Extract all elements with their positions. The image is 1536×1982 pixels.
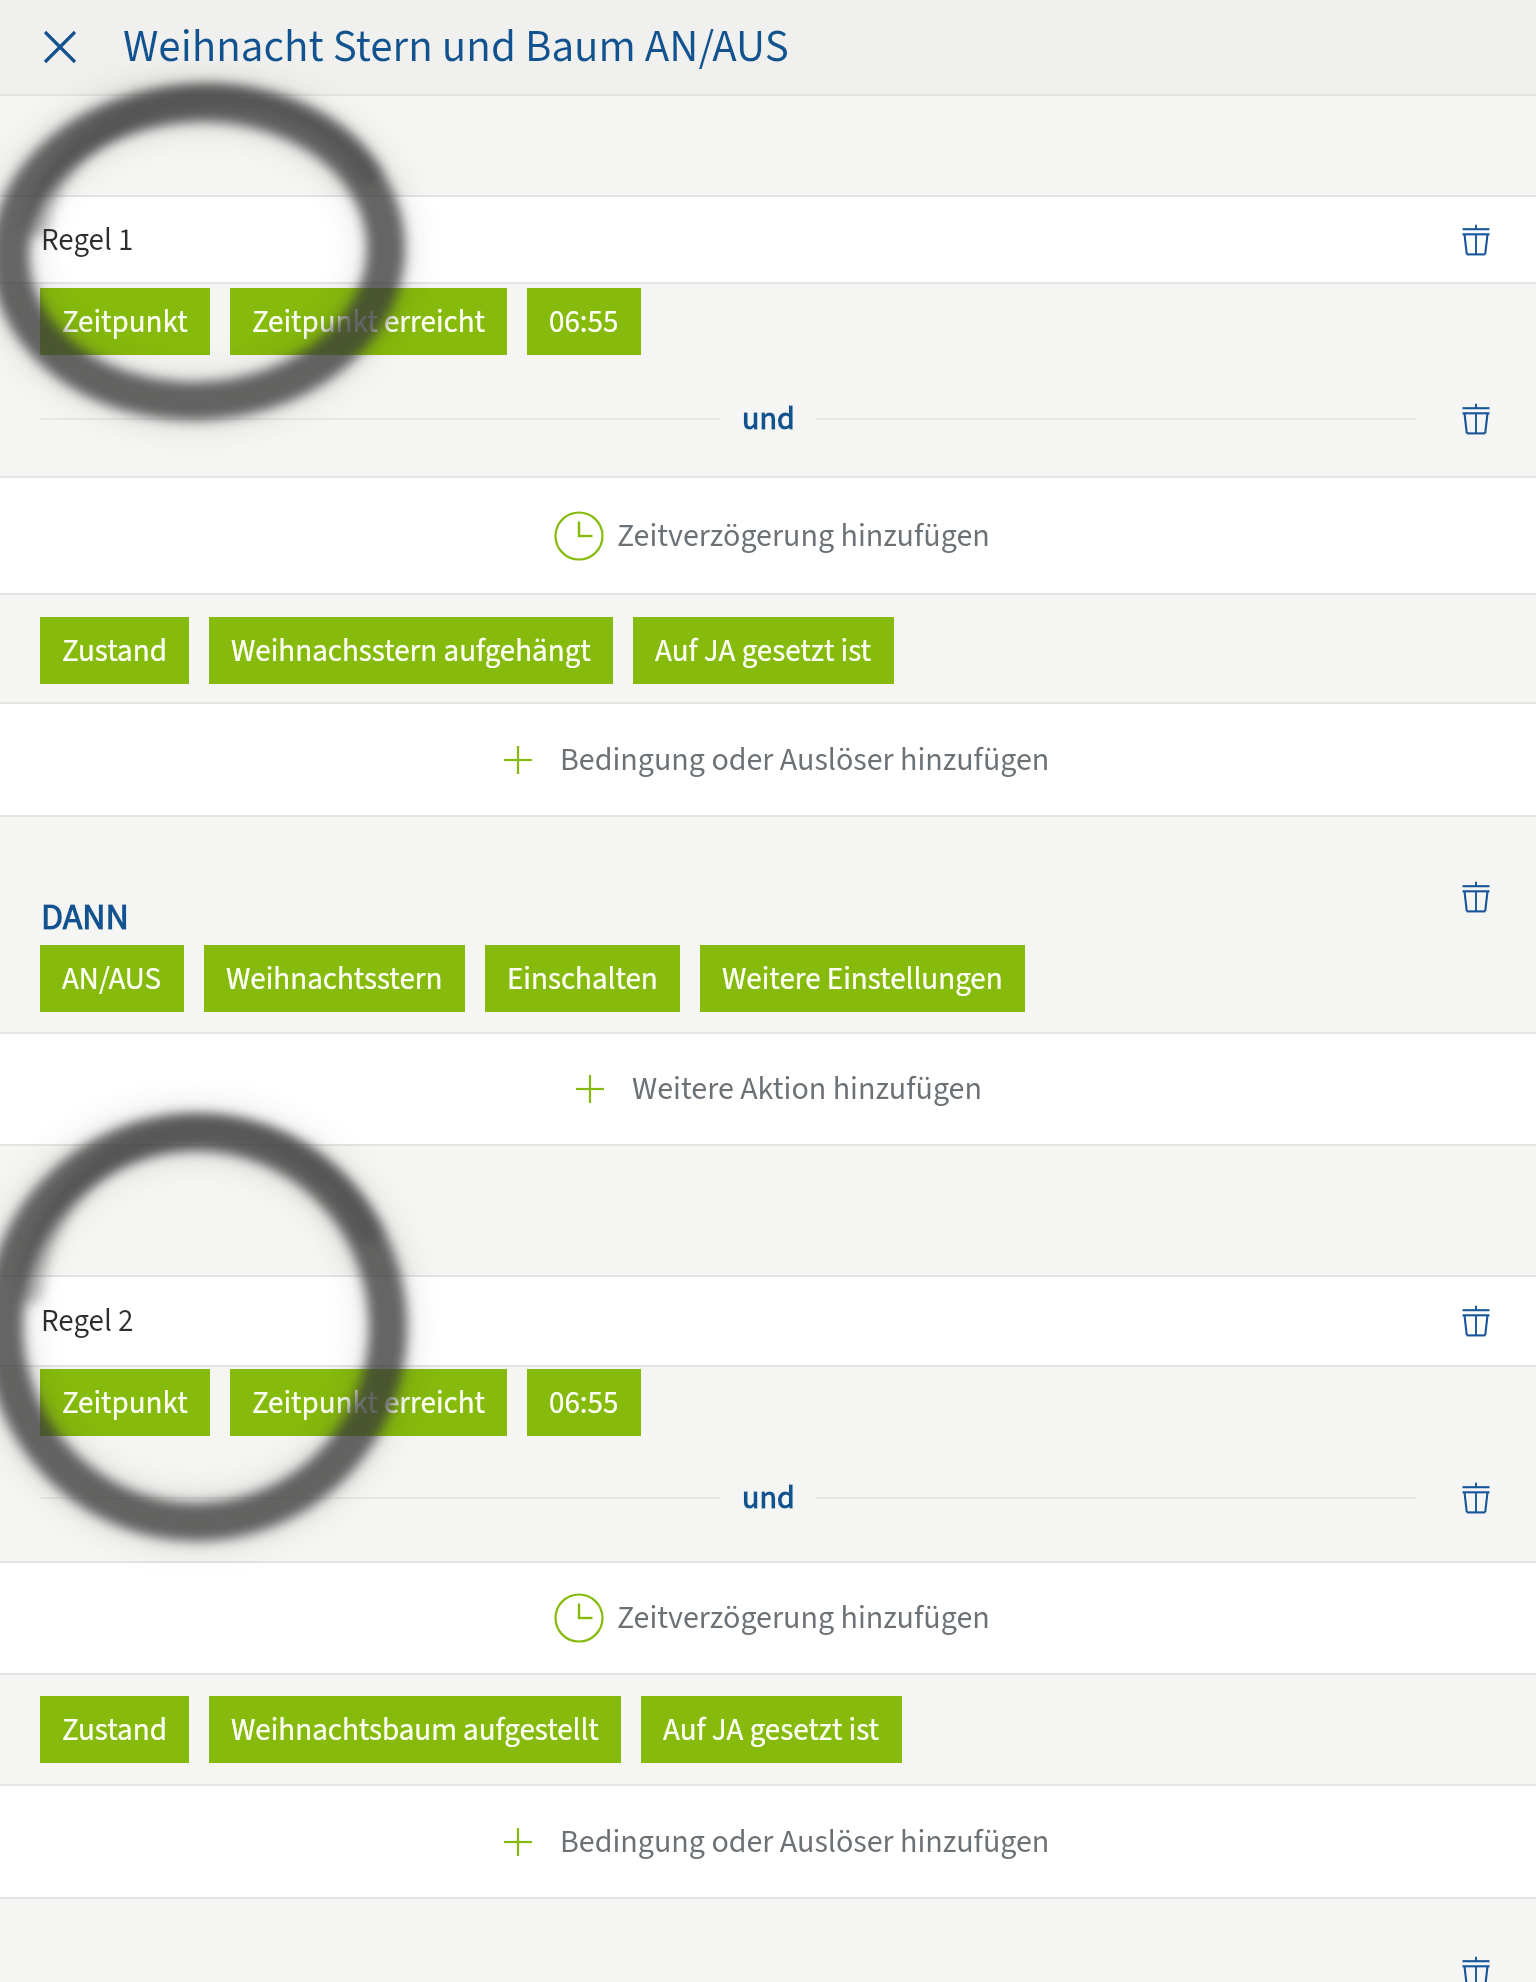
- staticText: Weihnacht Stern und Baum AN/AUS: [123, 15, 789, 79]
- staticText: Regel 2: [41, 1299, 134, 1343]
- button[interactable]: Regel 1: [0, 197, 1536, 282]
- button[interactable]: Weitere Einstellungen: [700, 945, 1025, 1012]
- button[interactable]: Zeitverzögerung hinzufügen: [0, 478, 1536, 593]
- button[interactable]: Zustand: [40, 1696, 189, 1763]
- button[interactable]: Auf JA gesetzt ist: [641, 1696, 902, 1763]
- staticText: DANN: [41, 892, 129, 943]
- staticText: Regel 1: [41, 218, 134, 262]
- staticText: Zustand: [62, 1708, 167, 1752]
- button[interactable]: Zustand: [40, 617, 189, 684]
- button[interactable]: Weitere Aktion hinzufügen: [0, 1034, 1536, 1144]
- button[interactable]: Löschen: [1440, 1285, 1512, 1357]
- staticText: Zeitpunkt erreicht: [252, 300, 485, 344]
- button[interactable]: Löschen: [1440, 1462, 1512, 1534]
- button[interactable]: Zeitpunkt: [40, 288, 210, 355]
- staticText: Zeitpunkt: [62, 300, 188, 344]
- button[interactable]: Schließen: [26, 13, 94, 81]
- staticText: Zeitverzögerung hinzufügen: [617, 1595, 990, 1641]
- staticText: Zeitpunkt: [62, 1381, 188, 1425]
- staticText: und: [742, 1475, 795, 1521]
- staticText: Zeitpunkt erreicht: [252, 1381, 485, 1425]
- button[interactable]: Zeitpunkt: [40, 1369, 210, 1436]
- staticText: Zustand: [62, 629, 167, 673]
- staticText: 06:55: [549, 300, 619, 344]
- button[interactable]: Auf JA gesetzt ist: [633, 617, 894, 684]
- button[interactable]: 06:55: [527, 288, 641, 355]
- staticText: Weihnachtsbaum aufgestellt: [231, 1708, 599, 1752]
- button[interactable]: AN/AUS: [40, 945, 184, 1012]
- button[interactable]: Einschalten: [485, 945, 680, 1012]
- button[interactable]: Löschen: [1440, 861, 1512, 933]
- button[interactable]: Löschen: [1440, 204, 1512, 276]
- staticText: Bedingung oder Auslöser hinzufügen: [560, 1819, 1050, 1865]
- button[interactable]: Bedingung oder Auslöser hinzufügen: [0, 704, 1536, 815]
- staticText: Weihnachsstern aufgehängt: [231, 629, 591, 673]
- button[interactable]: Weihnachsstern aufgehängt: [209, 617, 613, 684]
- staticText: Auf JA gesetzt ist: [655, 629, 872, 673]
- button[interactable]: Löschen: [1440, 383, 1512, 455]
- staticText: Bedingung oder Auslöser hinzufügen: [560, 737, 1050, 783]
- staticText: Weihnachtsstern: [226, 957, 443, 1001]
- staticText: 06:55: [549, 1381, 619, 1425]
- button[interactable]: Zeitpunkt erreicht: [230, 1369, 507, 1436]
- staticText: Weitere Einstellungen: [722, 957, 1003, 1001]
- button[interactable]: Zeitpunkt erreicht: [230, 288, 507, 355]
- staticText: Auf JA gesetzt ist: [663, 1708, 880, 1752]
- button[interactable]: Regel 2: [0, 1277, 1536, 1365]
- button[interactable]: Zeitverzögerung hinzufügen: [0, 1563, 1536, 1673]
- staticText: Einschalten: [507, 957, 658, 1001]
- button[interactable]: Löschen: [1440, 1936, 1512, 1982]
- staticText: Weitere Aktion hinzufügen: [632, 1066, 982, 1112]
- button[interactable]: Bedingung oder Auslöser hinzufügen: [0, 1786, 1536, 1897]
- staticText: AN/AUS: [62, 957, 162, 1001]
- staticText: und: [742, 396, 795, 442]
- button[interactable]: Weihnachtsbaum aufgestellt: [209, 1696, 621, 1763]
- button[interactable]: Weihnachtsstern: [204, 945, 465, 1012]
- staticText: Zeitverzögerung hinzufügen: [617, 513, 990, 559]
- button[interactable]: 06:55: [527, 1369, 641, 1436]
